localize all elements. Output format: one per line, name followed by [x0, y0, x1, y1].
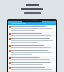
button[interactable]: [8, 44, 56, 49]
button[interactable]: [8, 25, 56, 32]
other: App screenshot: [7, 19, 57, 72]
button[interactable]: [8, 56, 56, 61]
button[interactable]: [8, 66, 56, 72]
button[interactable]: [8, 32, 56, 37]
button[interactable]: [8, 49, 56, 56]
button[interactable]: [8, 61, 56, 66]
button[interactable]: [8, 37, 56, 44]
